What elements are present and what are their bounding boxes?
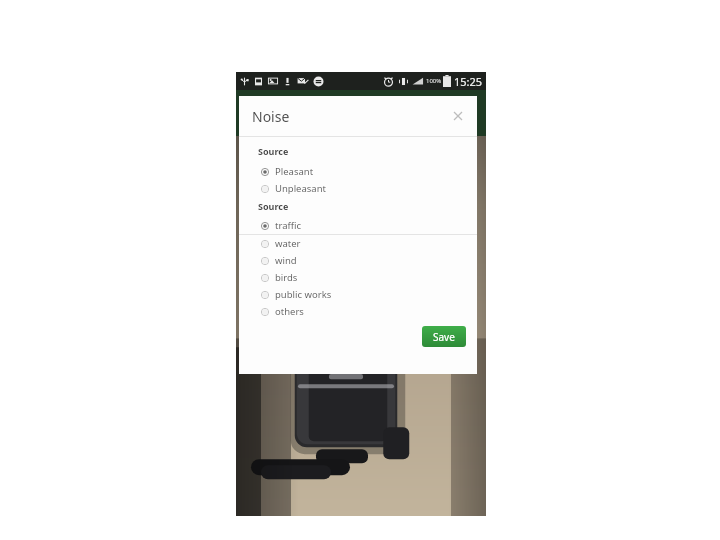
button[interactable]: birds xyxy=(239,269,477,286)
staticText: Source xyxy=(258,200,289,212)
button[interactable]: Noise xyxy=(252,107,290,126)
staticText: Source xyxy=(258,145,289,157)
button[interactable]: Save xyxy=(422,326,466,347)
staticText: traffic xyxy=(275,219,302,232)
staticText: Save xyxy=(433,330,455,344)
staticText: water xyxy=(275,237,301,250)
button[interactable]: public works xyxy=(239,286,477,303)
button[interactable]: water xyxy=(239,235,477,252)
staticText: Noise xyxy=(252,107,290,126)
staticText: 100% xyxy=(426,77,442,85)
staticText: birds xyxy=(275,271,298,284)
button[interactable]: others xyxy=(239,303,477,320)
staticText: wind xyxy=(275,254,297,267)
button[interactable]: traffic xyxy=(239,217,477,234)
staticText: others xyxy=(275,305,304,318)
staticText: Pleasant xyxy=(275,165,314,178)
staticText: Unpleasant xyxy=(275,182,326,195)
staticText: public works xyxy=(275,288,332,301)
button[interactable]: wind xyxy=(239,252,477,269)
button[interactable]: Pleasant xyxy=(239,163,477,180)
button[interactable]: Close xyxy=(449,107,467,125)
button[interactable]: Unpleasant xyxy=(239,180,477,197)
staticText: 15:25 xyxy=(454,74,483,89)
